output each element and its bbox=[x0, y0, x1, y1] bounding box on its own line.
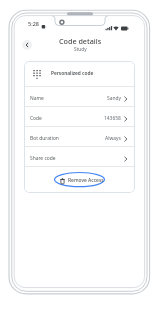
staticText: Name bbox=[30, 95, 44, 102]
button[interactable]: Personalized code bbox=[24, 61, 135, 86]
staticText: Bot duration bbox=[30, 135, 59, 142]
button[interactable]: Code bbox=[24, 107, 135, 126]
staticText: Sandy bbox=[107, 95, 121, 102]
button[interactable]: Name bbox=[24, 87, 135, 106]
button[interactable] bbox=[22, 40, 32, 50]
button[interactable]: Remove Access bbox=[24, 167, 135, 193]
staticText: 143658 bbox=[104, 115, 121, 122]
staticText: Personalized code bbox=[51, 70, 94, 77]
staticText: 5:28 bbox=[28, 20, 39, 27]
button[interactable]: Bot duration bbox=[24, 127, 135, 146]
staticText: Code bbox=[30, 115, 42, 122]
staticText: Code details bbox=[59, 36, 102, 46]
staticText: Always bbox=[105, 135, 121, 142]
staticText: Remove Access bbox=[68, 177, 104, 184]
button[interactable]: Share code bbox=[24, 147, 135, 166]
staticText: Share code bbox=[30, 155, 56, 162]
staticText: Study bbox=[74, 46, 87, 53]
